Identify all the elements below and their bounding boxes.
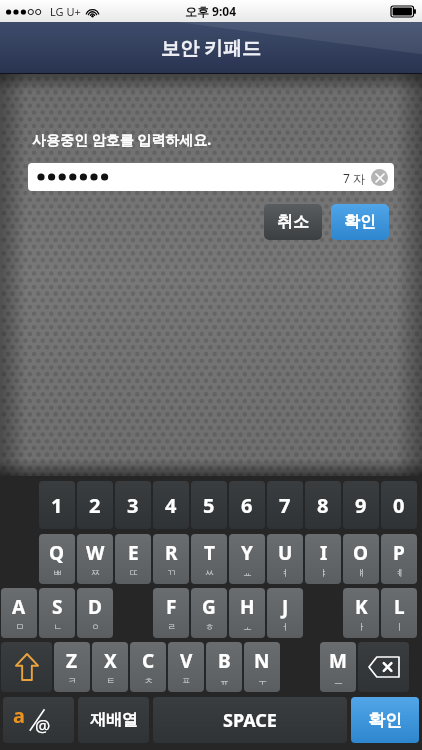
button[interactable]: G [191,588,227,638]
staticText: 취소 [277,212,309,232]
staticText: 9 [355,492,367,519]
staticText: H [240,594,255,620]
button[interactable]: P [381,534,417,584]
button[interactable]: E [115,534,151,584]
staticText: 재배열 [90,710,138,730]
staticText: ㅣ [395,621,404,632]
button[interactable]: 재배열 [78,697,149,743]
staticText: ㅁ [15,621,24,632]
staticText: I [320,540,328,566]
staticText: M [329,648,347,674]
staticText: 보안 키패드 [161,35,261,61]
staticText: a [13,702,25,729]
staticText: ㅇ [91,621,100,632]
staticText: ㄲ [167,567,176,578]
button[interactable]: W [77,534,113,584]
button[interactable]: S [39,588,75,638]
staticText: ㄹ [167,621,176,632]
button[interactable]: H [229,588,265,638]
staticText: K [355,594,368,620]
button[interactable]: C [130,642,166,692]
button[interactable]: 8 [305,481,341,529]
button[interactable]: X [92,642,128,692]
button[interactable]: 3 [115,481,151,529]
staticText: ㅌ [106,675,115,686]
button[interactable]: 2 [77,481,113,529]
staticText: SPACE [223,708,277,733]
button[interactable]: K [343,588,379,638]
button[interactable]: 확인 [331,204,389,240]
staticText: D [88,594,102,620]
staticText: A [12,594,26,620]
button[interactable]: 9 [343,481,379,529]
staticText: ㅆ [205,567,214,578]
staticText: S [52,594,63,620]
staticText: X [104,648,117,674]
staticText: ㅛ [243,567,252,578]
button[interactable]: 5 [191,481,227,529]
staticText: 6 [241,492,253,519]
staticText: ㅗ [243,621,252,632]
staticText: ㅋ [68,675,77,686]
button[interactable]: A [1,588,37,638]
button[interactable]: 0 [381,481,417,529]
staticText: ㅡ [334,675,343,686]
staticText: 2 [89,492,101,519]
staticText: ㅉ [91,567,100,578]
staticText: ㅏ [357,621,366,632]
button[interactable]: 7 자 [28,163,394,191]
button[interactable]: F [153,588,189,638]
staticText: 3 [127,492,139,519]
button[interactable]: M [320,642,356,692]
staticText: N [254,648,270,674]
button[interactable]: B [206,642,242,692]
button[interactable]: SPACE [153,697,347,743]
staticText: 7 [279,492,291,519]
button[interactable]: U [267,534,303,584]
button[interactable]: T [191,534,227,584]
button[interactable]: L [381,588,417,638]
staticText: 오후 9:04 [185,3,237,19]
button[interactable]: O [343,534,379,584]
button[interactable]: Q [39,534,75,584]
staticText: ㅃ [53,567,62,578]
button[interactable]: Y [229,534,265,584]
button[interactable]: Backspace [358,642,409,692]
staticText: Y [241,540,253,566]
staticText: Z [66,648,78,674]
staticText: C [142,648,155,674]
staticText: 확인 [344,212,376,232]
staticText: 1 [51,492,63,519]
button[interactable]: Z [54,642,90,692]
button[interactable]: Shift [1,642,52,692]
staticText: Q [49,540,65,566]
button[interactable]: 1 [39,481,75,529]
staticText: @ [35,714,51,737]
staticText: L [394,594,405,620]
button[interactable]: 4 [153,481,189,529]
button[interactable]: R [153,534,189,584]
button[interactable]: 확인 [351,697,419,743]
button[interactable]: N [244,642,280,692]
staticText: R [165,540,178,566]
button[interactable]: D [77,588,113,638]
button[interactable]: 취소 [264,204,322,240]
staticText: J [282,594,289,620]
staticText: ㅑ [319,567,328,578]
button[interactable]: Symbols [3,697,74,743]
staticText: ㅍ [182,675,191,686]
staticText: P [393,540,405,566]
button[interactable]: 6 [229,481,265,529]
button[interactable]: Clear [371,169,388,186]
button[interactable]: 7 [267,481,303,529]
staticText: E [128,540,139,566]
button[interactable]: I [305,534,341,584]
staticText: ㅜ [258,675,267,686]
staticText: ㅊ [144,675,153,686]
button[interactable]: V [168,642,204,692]
staticText: ㄸ [129,567,138,578]
staticText: 0 [393,492,405,519]
staticText: 7 자 [343,170,365,186]
staticText: B [218,648,231,674]
button[interactable]: J [267,588,303,638]
